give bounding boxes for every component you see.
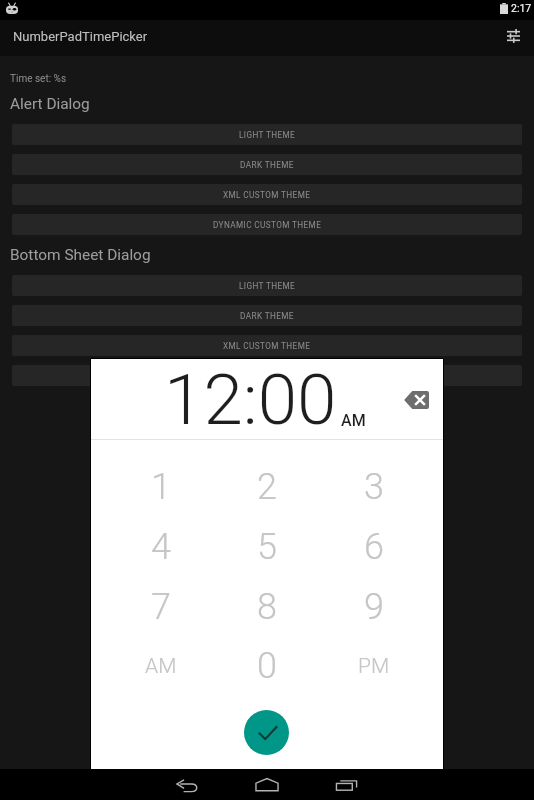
staticText: DYNAMIC CUSTOM THEME	[213, 220, 322, 230]
staticText: 4	[151, 526, 171, 568]
button[interactable]: 0	[215, 636, 319, 696]
staticText: AM	[341, 411, 366, 430]
staticText: 2:17	[511, 2, 532, 14]
button[interactable]: LIGHT THEME	[12, 124, 522, 145]
button[interactable]: Home	[241, 769, 293, 800]
button[interactable]: Recents	[321, 769, 373, 800]
button[interactable]: AM	[109, 636, 213, 696]
staticText: 6	[364, 526, 384, 568]
staticText: XML CUSTOM THEME	[223, 341, 311, 351]
staticText: 12:00	[164, 358, 337, 441]
button[interactable]: 2	[215, 457, 319, 517]
button[interactable]: DYNAMIC CUSTOM THEME	[12, 365, 522, 386]
button[interactable]: Confirm	[244, 710, 289, 755]
staticText: LIGHT THEME	[239, 281, 296, 291]
staticText: AM	[145, 654, 177, 679]
button[interactable]: 5	[215, 517, 319, 577]
staticText: 9	[364, 586, 384, 628]
staticText: DARK THEME	[240, 311, 294, 321]
button[interactable]: DARK THEME	[12, 154, 522, 175]
button[interactable]: DYNAMIC CUSTOM THEME	[12, 214, 522, 235]
button[interactable]: LIGHT THEME	[12, 275, 522, 296]
button[interactable]: 8	[215, 577, 319, 637]
button[interactable]: 9	[322, 577, 426, 637]
button[interactable]: 7	[109, 577, 213, 637]
staticText: DYNAMIC CUSTOM THEME	[213, 371, 322, 381]
button[interactable]: 1	[109, 457, 213, 517]
button[interactable]: Settings	[500, 23, 526, 49]
staticText: PM	[358, 654, 390, 679]
staticText: LIGHT THEME	[239, 130, 296, 140]
button[interactable]: PM	[322, 636, 426, 696]
staticText: 1	[151, 466, 171, 508]
button[interactable]: Back	[160, 769, 212, 800]
button[interactable]: DARK THEME	[12, 305, 522, 326]
button[interactable]: 6	[322, 517, 426, 577]
button[interactable]: Backspace	[398, 382, 434, 418]
staticText: NumberPadTimePicker	[13, 29, 148, 44]
staticText: Bottom Sheet Dialog	[10, 246, 151, 264]
staticText: 7	[151, 586, 171, 628]
staticText: Time set: %s	[10, 73, 67, 85]
staticText: Alert Dialog	[10, 95, 90, 113]
button[interactable]: 4	[109, 517, 213, 577]
button[interactable]: XML CUSTOM THEME	[12, 335, 522, 356]
staticText: 3	[364, 466, 384, 508]
button[interactable]: XML CUSTOM THEME	[12, 184, 522, 205]
staticText: 8	[257, 586, 277, 628]
staticText: XML CUSTOM THEME	[223, 190, 311, 200]
staticText: 5	[257, 526, 277, 568]
staticText: DARK THEME	[240, 160, 294, 170]
staticText: 2	[257, 466, 277, 508]
staticText: 0	[257, 645, 277, 687]
button[interactable]: 3	[322, 457, 426, 517]
